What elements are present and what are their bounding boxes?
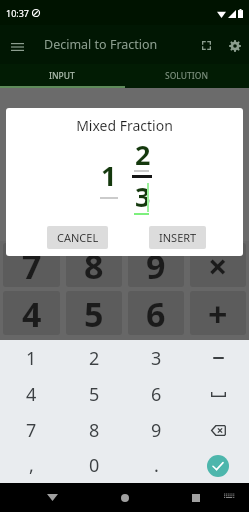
- staticText: Decimal to Fraction: [44, 36, 158, 53]
- button[interactable]: 7: [0, 412, 63, 448]
- staticText: 8: [89, 418, 100, 443]
- other: Minus: [214, 356, 223, 360]
- button[interactable]: Open navigation menu: [5, 34, 30, 59]
- staticText: 2: [89, 346, 100, 371]
- staticText: 9: [146, 243, 166, 287]
- button[interactable]: Fullscreen: [194, 33, 219, 58]
- staticText: .: [154, 453, 159, 478]
- staticText: CANCEL: [57, 230, 99, 245]
- staticText: 4: [22, 291, 42, 335]
- staticText: ,: [29, 453, 34, 478]
- staticText: 6: [151, 382, 162, 407]
- staticText: 1: [26, 346, 37, 371]
- staticText: 3: [151, 346, 162, 371]
- button[interactable]: Minus: [187, 340, 249, 376]
- staticText: Mixed Fraction: [76, 116, 173, 135]
- button[interactable]: 8: [66, 243, 122, 287]
- button[interactable]: Switch keyboard: [218, 485, 241, 508]
- button[interactable]: 9: [125, 412, 187, 448]
- button[interactable]: 8: [63, 412, 125, 448]
- button[interactable]: Home: [112, 485, 137, 510]
- staticText: 1: [101, 157, 117, 194]
- staticText: SOLUTION: [165, 70, 209, 82]
- staticText: 6: [146, 291, 166, 335]
- staticText: 4: [26, 382, 37, 407]
- button[interactable]: ×: [190, 243, 246, 287]
- staticText: INPUT: [49, 70, 75, 82]
- staticText: 5: [84, 291, 104, 335]
- button[interactable]: Enter: [187, 448, 249, 483]
- button[interactable]: INSERT: [149, 226, 206, 249]
- button[interactable]: Recent apps: [183, 485, 208, 510]
- staticText: 9: [151, 418, 162, 443]
- staticText: 8: [84, 243, 104, 287]
- button[interactable]: 5: [66, 291, 122, 335]
- button[interactable]: .: [125, 448, 187, 483]
- button[interactable]: SOLUTION: [124, 64, 249, 88]
- button[interactable]: 7: [3, 243, 60, 287]
- staticText: 5: [89, 382, 100, 407]
- button[interactable]: 9: [128, 243, 184, 287]
- staticText: 10:37: [6, 7, 30, 19]
- button[interactable]: 0: [63, 448, 125, 483]
- button[interactable]: 6: [125, 376, 187, 412]
- staticText: ×: [208, 243, 228, 287]
- button[interactable]: Delete: [187, 412, 249, 448]
- button[interactable]: 4: [3, 291, 60, 335]
- button[interactable]: 6: [128, 291, 184, 335]
- staticText: 2: [135, 136, 151, 173]
- button[interactable]: 2: [63, 340, 125, 376]
- other: Space: [211, 392, 226, 397]
- button[interactable]: Enter: [207, 455, 229, 477]
- button[interactable]: 1: [0, 340, 63, 376]
- button[interactable]: CANCEL: [47, 226, 108, 249]
- staticText: 7: [22, 243, 42, 287]
- button[interactable]: Back: [40, 485, 65, 510]
- button[interactable]: 5: [63, 376, 125, 412]
- button[interactable]: 4: [0, 376, 63, 412]
- other: Delete: [211, 425, 226, 436]
- button[interactable]: +: [190, 291, 246, 335]
- button[interactable]: 3: [125, 340, 187, 376]
- staticText: 3: [135, 178, 151, 215]
- staticText: INSERT: [159, 230, 197, 245]
- button[interactable]: Settings: [222, 33, 247, 58]
- button[interactable]: INPUT: [0, 64, 124, 88]
- staticText: 0: [89, 453, 100, 478]
- button[interactable]: ,: [0, 448, 63, 483]
- staticText: +: [208, 291, 228, 335]
- button[interactable]: Space: [187, 376, 249, 412]
- staticText: 7: [26, 418, 37, 443]
